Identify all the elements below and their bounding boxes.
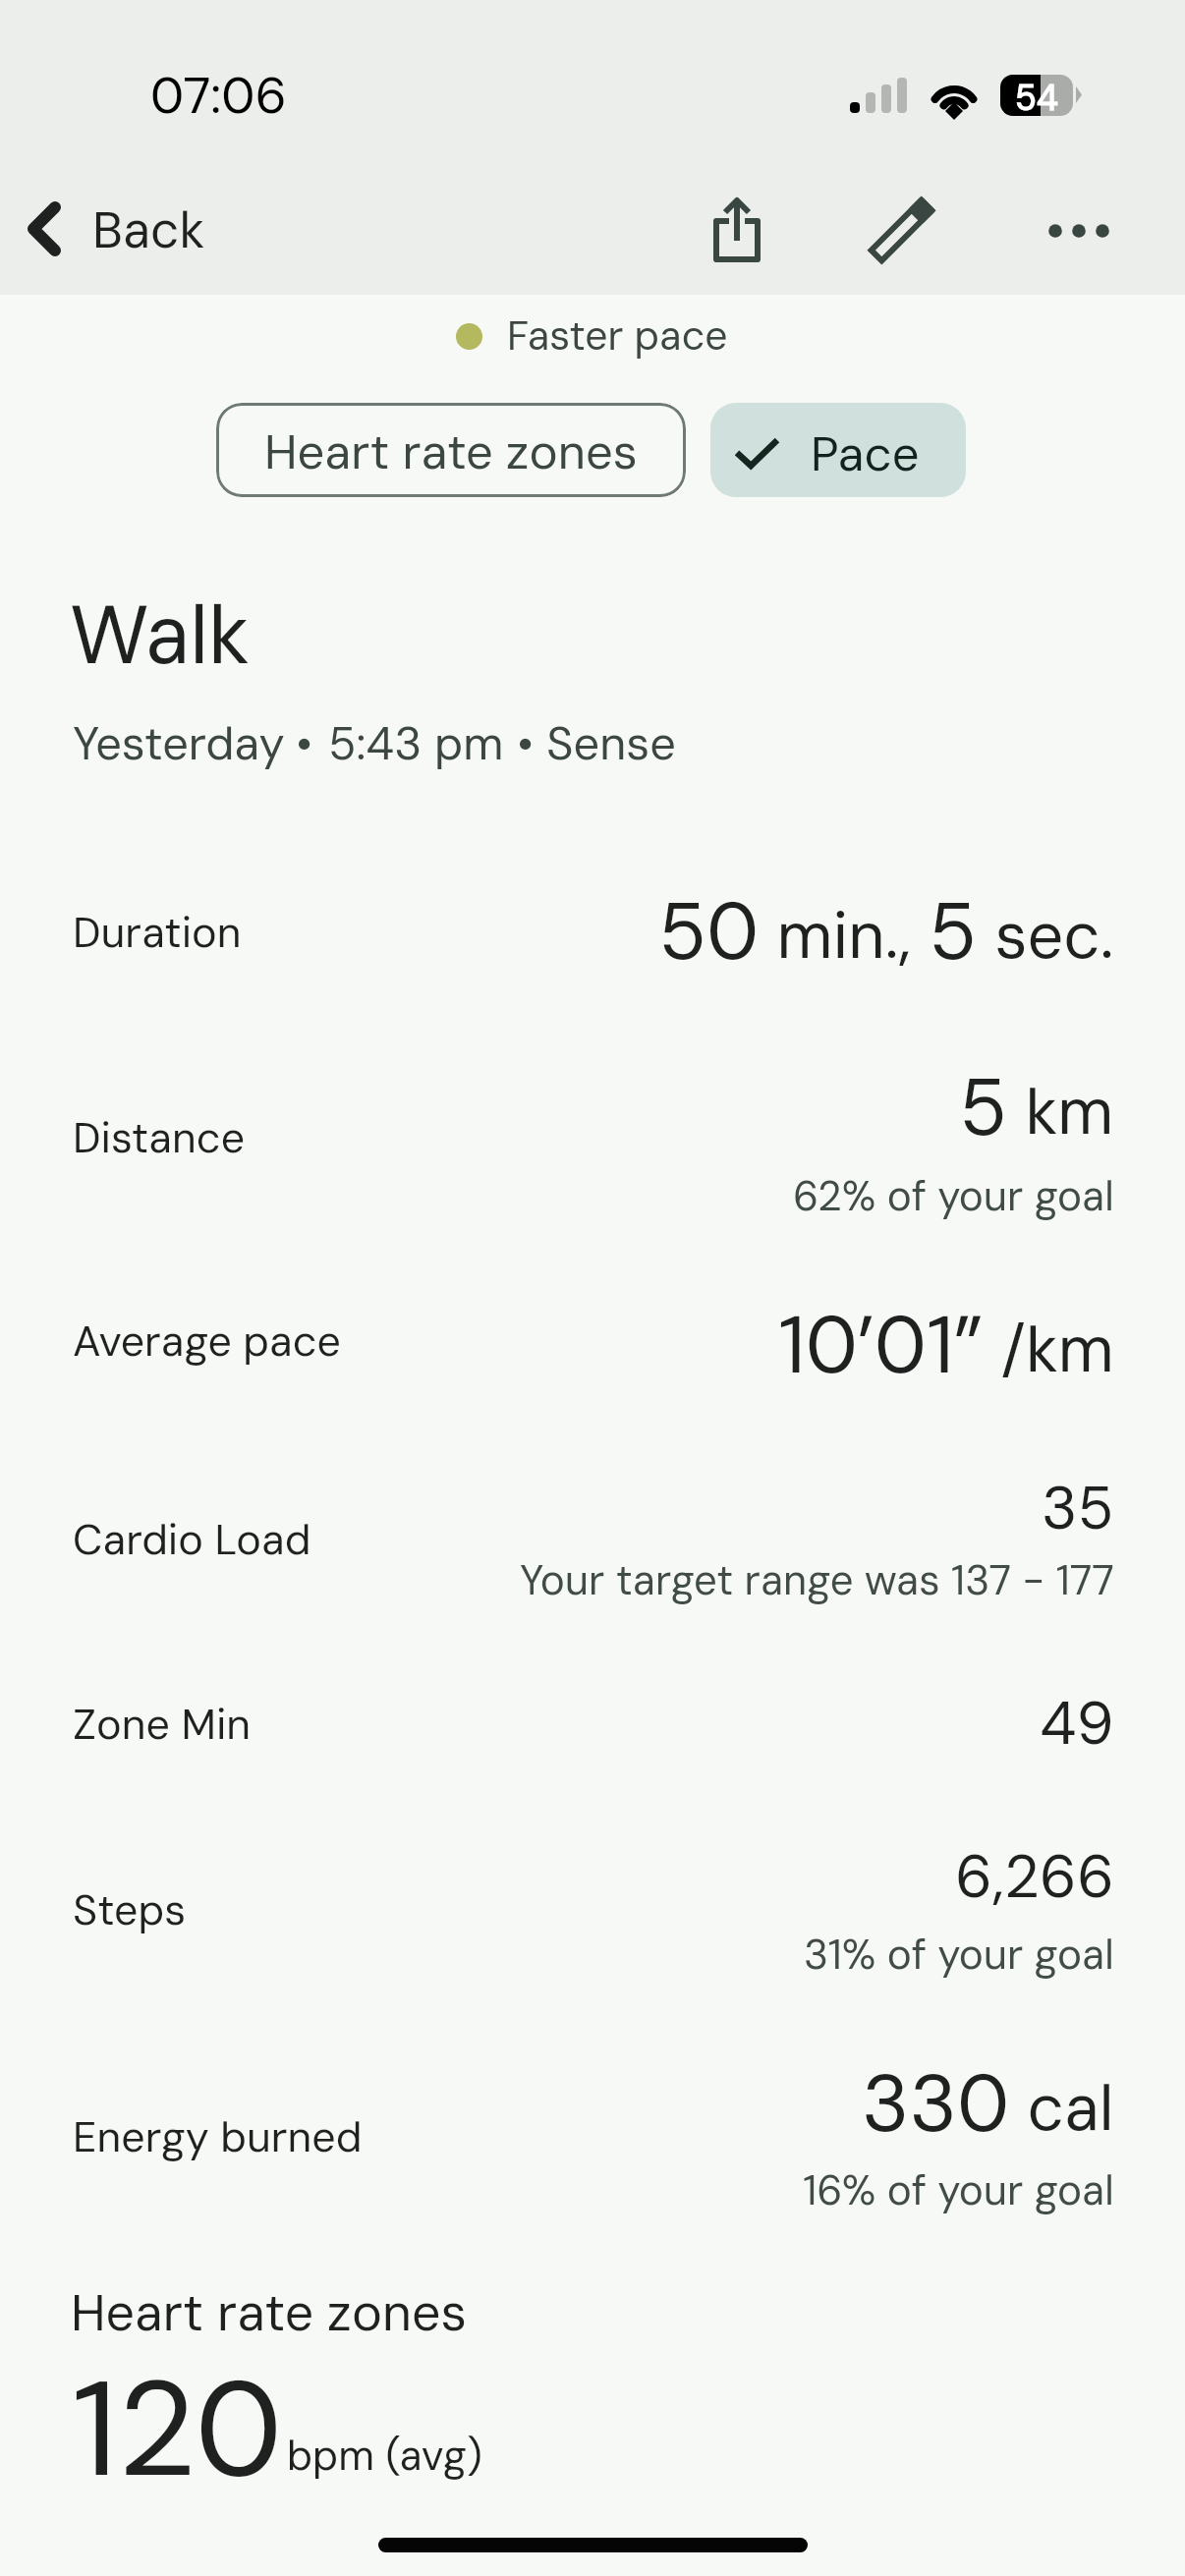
button[interactable]: Distance [0,1019,1185,1252]
staticText: Zone Min [73,1697,252,1752]
staticText: Pace [811,422,920,485]
staticText: Steps [73,1882,187,1937]
staticText: Duration [73,905,242,960]
button[interactable]: Edit [845,182,953,280]
staticText: Faster pace [507,309,728,362]
button[interactable]: Duration [0,843,1185,1019]
button[interactable]: Back [8,183,225,275]
button[interactable]: More options [1022,177,1140,285]
staticText: Your target range was 137 - 177 [520,1553,1114,1607]
button[interactable]: Energy burned [0,2019,1185,2252]
staticText: Cardio Load [73,1512,311,1567]
staticText: cal [1010,2067,1114,2151]
staticText: 16% of your goal [803,2163,1114,2217]
button[interactable]: Zone Min [0,1649,1185,1798]
staticText: Energy burned [73,2109,363,2164]
staticText: Sense [546,713,676,773]
staticText: Average pace [73,1314,341,1369]
staticText: 6,266 [955,1837,1114,1915]
staticText: 31% of your goal [804,1928,1114,1982]
staticText: • [296,713,313,773]
button[interactable]: Cardio Load [0,1428,1185,1649]
staticText: min., [760,895,929,979]
staticText: Yesterday [73,713,285,773]
button[interactable]: Average pace [0,1252,1185,1428]
staticText: • [517,713,535,773]
staticText: Distance [73,1110,246,1165]
staticText: 50 [658,880,760,983]
staticText: bpm (avg) [287,2429,482,2483]
staticText: sec. [978,895,1114,979]
staticText: 5 [929,880,978,983]
button[interactable]: Share [688,177,786,285]
staticText: km [1008,1071,1114,1154]
button[interactable]: Pace [710,403,966,497]
staticText: Heart rate zones [264,420,638,483]
staticText: 49 [1040,1684,1114,1762]
staticText: 35 [1042,1469,1114,1546]
staticText: 5:43 pm [328,713,504,773]
staticText: /km [984,1309,1114,1392]
staticText: Back [92,197,205,262]
staticText: 07:06 [150,62,287,129]
staticText: 5 [959,1056,1008,1159]
button[interactable]: Steps [0,1798,1185,2019]
staticText: 62% of your goal [793,1169,1114,1223]
staticText: 54 [1015,75,1058,121]
staticText: Heart rate zones [71,2279,467,2346]
staticText: 10’01” [778,1294,984,1397]
staticText: Walk [70,583,250,689]
button[interactable]: Heart rate zones [216,403,686,497]
staticText: 120 [72,2342,283,2516]
staticText: 330 [862,2052,1010,2156]
